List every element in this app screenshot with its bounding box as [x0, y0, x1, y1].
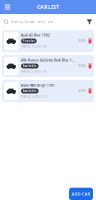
staticText: Rating: 3.00/5.00	[21, 95, 47, 98]
staticText: Search by Car make, model, year	[11, 20, 53, 24]
staticText: ADD CAR	[71, 191, 90, 196]
button[interactable]: Alfa Romeo Giulietta Dark Blue 1981	[2, 55, 94, 77]
staticText: 0/50	[78, 89, 85, 93]
button[interactable]: Audi A3 Blue 1982	[2, 30, 94, 52]
staticText: Available	[23, 89, 37, 93]
staticText: Popular	[23, 39, 35, 43]
staticText: Rating: 3.00/5.00	[21, 70, 47, 73]
staticText: Alfa Romeo Giulietta Dark Blue 1981	[21, 59, 73, 62]
staticText: Audi A3 Blue 1982	[21, 34, 50, 37]
button[interactable]: ADD CAR	[69, 188, 93, 200]
staticText: CAR LIST	[37, 3, 59, 11]
staticText: Rating: 3.00/5.00	[21, 45, 47, 48]
button[interactable]: Filter	[86, 19, 92, 25]
button[interactable]: Menu	[3, 2, 12, 11]
staticText: 0/50	[78, 64, 85, 68]
button[interactable]: Acura MDX Beige 1981	[2, 80, 94, 102]
staticText: Acura MDX Beige 1981	[21, 84, 55, 87]
staticText: Available	[23, 64, 37, 68]
staticText: 0/50	[78, 39, 85, 43]
